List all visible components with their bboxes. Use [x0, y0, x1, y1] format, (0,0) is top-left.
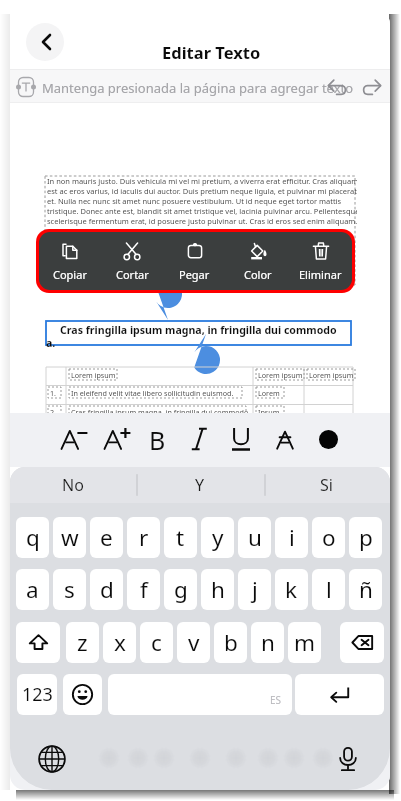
button[interactable]: c — [140, 622, 173, 663]
staticText: t — [176, 522, 185, 553]
button[interactable]: f — [127, 569, 160, 610]
button[interactable]: d — [90, 569, 123, 610]
button[interactable]: Text colour — [312, 423, 344, 455]
staticText: ñ — [359, 574, 373, 605]
staticText: B — [149, 423, 166, 455]
staticText: x — [114, 627, 126, 658]
button[interactable]: 123 — [17, 674, 57, 715]
button[interactable]: t — [164, 517, 197, 558]
button[interactable]: Decrease text size — [58, 423, 90, 455]
button[interactable]: Voice input — [334, 745, 362, 773]
button[interactable]: Enter — [295, 674, 384, 715]
staticText: Eliminar — [299, 267, 342, 282]
button[interactable]: Y — [136, 467, 263, 503]
button[interactable]: q — [16, 517, 49, 558]
button[interactable]: z — [66, 622, 99, 663]
staticText: Lorem — [258, 388, 280, 398]
button[interactable]: Increase text size — [101, 423, 133, 455]
button[interactable]: B — [141, 423, 173, 455]
staticText: 2. — [50, 407, 57, 417]
button[interactable]: Si — [263, 467, 390, 503]
button[interactable]: Redo — [360, 76, 383, 99]
button[interactable]: e — [90, 517, 123, 558]
staticText: i — [289, 522, 295, 553]
staticText: p — [359, 522, 373, 553]
staticText: Si — [320, 474, 333, 496]
button[interactable]: h — [201, 569, 234, 610]
staticText: 1. — [50, 388, 57, 398]
staticText: s — [64, 574, 75, 605]
staticText: ES — [270, 693, 282, 707]
staticText: ultricies ut purus. Ut facilisis et lacu… — [47, 226, 213, 236]
button[interactable]: Space — [108, 674, 292, 715]
staticText: Editar Texto — [162, 41, 261, 63]
staticText: tristique. Donec ante est, blandit sit a… — [47, 206, 357, 216]
button[interactable]: m — [288, 622, 321, 663]
staticText: scelerisque fermentum erat, id posuere j… — [47, 216, 357, 226]
staticText: c — [151, 627, 162, 658]
button[interactable]: j — [238, 569, 271, 610]
button[interactable]: Italic — [183, 423, 215, 455]
button[interactable]: Underline — [225, 423, 257, 455]
staticText: In eleifend velit vitae libero sollicitu… — [47, 236, 258, 246]
button[interactable]: Backspace — [340, 622, 384, 663]
staticText: w — [61, 522, 79, 553]
button[interactable]: ñ — [349, 569, 382, 610]
staticText: Cras fringilla ipsum magna, in fringilla… — [60, 323, 337, 337]
staticText: In non mauris justo. Duis vehicula mi ve… — [47, 176, 357, 186]
staticText: No — [62, 474, 84, 496]
staticText: a. — [46, 336, 56, 350]
button[interactable]: Change keyboard — [38, 745, 66, 773]
button[interactable]: Shift — [16, 622, 60, 663]
staticText: In eleifend velit vitae libero sollicitu… — [71, 388, 234, 398]
button[interactable]: Eliminar — [289, 232, 352, 290]
button[interactable]: a — [16, 569, 49, 610]
staticText: 123 — [22, 682, 53, 707]
button[interactable]: w — [53, 517, 86, 558]
button[interactable]: g — [164, 569, 197, 610]
button[interactable]: Add text box — [15, 76, 37, 98]
staticText: d — [100, 574, 114, 605]
staticText: l — [326, 574, 332, 605]
button[interactable]: Undo — [326, 76, 349, 99]
staticText: y — [212, 522, 224, 553]
button[interactable]: p — [349, 517, 382, 558]
staticText: Cras fringilla ipsum magna, in fringilla… — [71, 407, 248, 417]
staticText: o — [322, 522, 336, 553]
staticText: m — [294, 627, 316, 658]
staticText: r — [139, 522, 149, 553]
button[interactable]: u — [238, 517, 271, 558]
staticText: v — [188, 627, 200, 658]
button[interactable]: l — [312, 569, 345, 610]
button[interactable]: b — [214, 622, 247, 663]
button[interactable]: Strikethrough — [269, 423, 301, 455]
staticText: Lorem ipsum — [71, 370, 116, 380]
staticText: Lorem ipsum — [309, 370, 354, 380]
button[interactable]: n — [251, 622, 284, 663]
button[interactable]: Copiar — [39, 232, 101, 290]
staticText: e — [100, 522, 113, 553]
staticText: Vestibulum pellentesque commodo nisl, vi… — [47, 256, 318, 266]
button[interactable]: Color — [226, 232, 289, 290]
button[interactable]: x — [103, 622, 136, 663]
button[interactable]: r — [127, 517, 160, 558]
button[interactable]: No — [10, 467, 136, 503]
button[interactable]: v — [177, 622, 210, 663]
staticText: vulputate lectus quis, pellentesque comm… — [47, 246, 342, 256]
staticText: z — [77, 627, 88, 658]
staticText: h — [211, 574, 225, 605]
button[interactable]: k — [275, 569, 308, 610]
button[interactable]: i — [275, 517, 308, 558]
button[interactable]: Pegar — [163, 232, 226, 290]
staticText: Mantenga presionada la página para agreg… — [42, 79, 354, 97]
button[interactable]: Cortar — [101, 232, 163, 290]
staticText: f — [140, 574, 148, 605]
button[interactable]: o — [312, 517, 345, 558]
staticText: k — [285, 574, 298, 605]
button[interactable]: y — [201, 517, 234, 558]
button[interactable]: s — [53, 569, 86, 610]
button[interactable]: Emoji keyboard — [63, 674, 102, 715]
staticText: b — [224, 627, 238, 658]
staticText: j — [252, 574, 258, 605]
button[interactable]: Back — [26, 23, 64, 61]
